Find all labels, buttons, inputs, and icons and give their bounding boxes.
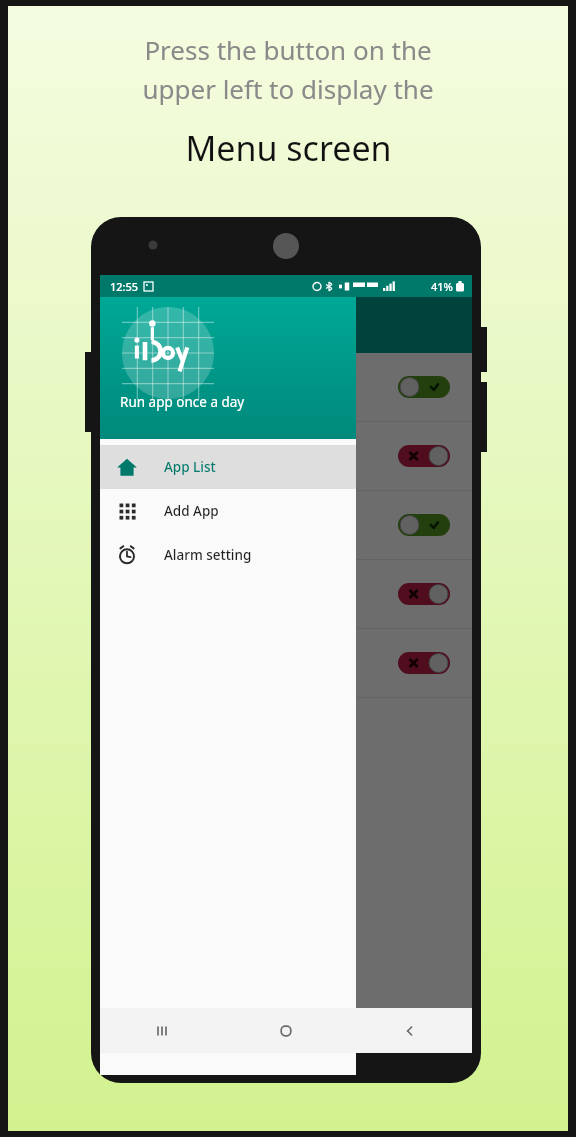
button[interactable]: Add App — [100, 489, 356, 533]
button[interactable]: Disabled — [100, 629, 472, 697]
button[interactable]: Disabled — [398, 445, 450, 467]
button[interactable]: Alarm setting — [100, 533, 356, 577]
button[interactable]: Enabled — [100, 491, 472, 559]
button[interactable]: Enabled — [398, 514, 450, 536]
button[interactable]: Disabled — [398, 652, 450, 674]
staticText: Run app once a day — [120, 393, 245, 411]
button[interactable]: recents — [100, 1008, 224, 1053]
button[interactable]: Enabled — [100, 353, 472, 421]
button[interactable]: Enabled — [398, 376, 450, 398]
button[interactable]: App List — [100, 445, 356, 489]
staticText: Menu screen — [185, 125, 392, 171]
button[interactable]: Disabled — [100, 422, 472, 490]
button[interactable]: Home — [224, 1008, 348, 1053]
staticText: Add App — [164, 502, 219, 520]
staticText: Alarm setting — [164, 546, 252, 564]
staticText: 12:55 — [110, 279, 139, 294]
button[interactable]: Back — [348, 1008, 472, 1053]
staticText: App List — [164, 458, 216, 476]
button[interactable]: Disabled — [100, 560, 472, 628]
staticText: Press the button on the upper left to di… — [142, 32, 434, 107]
staticText: 41% — [431, 279, 453, 294]
button[interactable]: Disabled — [398, 583, 450, 605]
